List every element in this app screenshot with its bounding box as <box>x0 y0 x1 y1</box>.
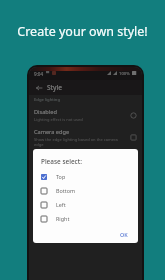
button[interactable]: Screen edge <box>29 160 142 180</box>
staticText: Right <box>56 215 70 222</box>
staticText: 9:04 <box>34 71 44 77</box>
staticText: 100% <box>119 71 130 77</box>
staticText: Camera edge <box>34 128 70 136</box>
button[interactable]: Back <box>33 82 44 93</box>
button[interactable]: OK <box>116 230 132 239</box>
staticText: Style <box>47 83 62 92</box>
button[interactable]: Right <box>41 215 132 222</box>
staticText: Screen edge <box>34 163 67 171</box>
button[interactable]: Camera edge <box>29 125 142 150</box>
button[interactable]: Top <box>41 173 132 180</box>
staticText: Create your own style! <box>17 23 148 40</box>
staticText: Fingerprint sensor <box>34 183 83 191</box>
staticText: Show a lighting effect around the whole … <box>34 172 123 177</box>
staticText: Left <box>56 201 66 208</box>
staticText: Lighting effect is not used <box>34 117 83 122</box>
staticText: Top <box>56 173 66 180</box>
staticText: Show the edge lighting based on the came… <box>34 137 126 147</box>
staticText: Edge lighting <box>34 97 61 103</box>
staticText: Please select: <box>41 157 82 166</box>
staticText: Show a lighting effect around the finger… <box>34 192 126 207</box>
staticText: OK <box>120 231 128 238</box>
button[interactable]: Fingerprint sensor <box>29 180 142 210</box>
staticText: Disabled <box>34 108 57 116</box>
staticText: Bottom <box>56 187 75 194</box>
button[interactable]: Bottom <box>41 187 132 194</box>
button[interactable]: Disabled <box>29 105 142 125</box>
button[interactable]: Left <box>41 201 132 208</box>
